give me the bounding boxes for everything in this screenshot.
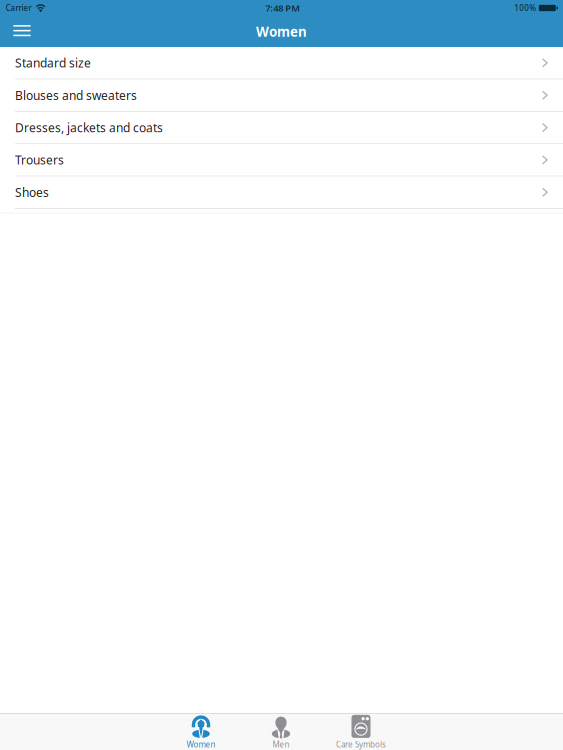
button[interactable]: Trousers [0, 144, 563, 177]
button[interactable]: Blouses and sweaters [0, 80, 563, 112]
button[interactable]: Care Symbols [321, 714, 401, 750]
button[interactable]: Shoes [0, 177, 563, 209]
staticText: Shoes [15, 184, 49, 200]
button[interactable]: Dresses, jackets and coats [0, 112, 563, 144]
button[interactable]: Standard size [0, 47, 563, 80]
staticText: Blouses and sweaters [15, 87, 137, 103]
staticText: 7:48 PM [265, 2, 300, 14]
button[interactable]: Men [241, 714, 321, 750]
staticText: Men [272, 739, 289, 750]
staticText: Dresses, jackets and coats [15, 120, 163, 135]
staticText: Care Symbols [336, 739, 386, 750]
button[interactable]: Women [161, 714, 241, 750]
staticText: Trousers [15, 152, 64, 168]
staticText: Carrier [6, 3, 32, 13]
staticText: 100% [514, 3, 536, 13]
staticText: Standard size [15, 55, 91, 71]
staticText: Women [256, 23, 307, 40]
staticText: Women [186, 739, 215, 750]
button[interactable]: Menu [6, 16, 38, 47]
